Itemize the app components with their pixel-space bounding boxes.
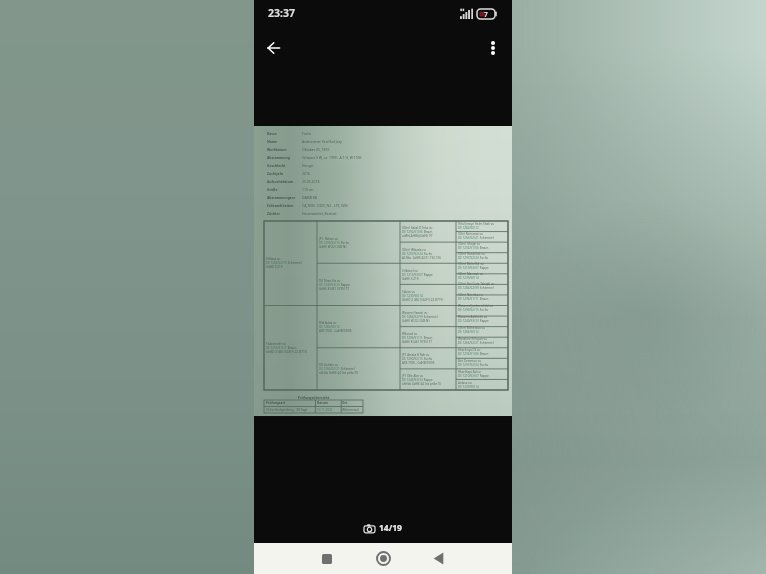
staticText: Schimmel [423,315,438,319]
staticText: DE 1290/52/15 [402,357,423,361]
staticText: Hengst [302,163,314,168]
button[interactable]: Home [363,543,403,574]
staticText: DE 1240/53/33 [402,378,423,382]
staticText: GdHE 8 (441 9735) 77 [319,287,350,291]
staticText: DE 1297/52/24 [458,256,479,260]
staticText: GdHE 8 (441 9735) 77 [402,340,433,344]
staticText: DE 1266/52/21 [458,341,479,345]
button[interactable]: Back [257,32,289,64]
staticText: JP1. Rahan vu [319,237,339,241]
staticText: Rharliesja Dil vu [458,348,481,352]
staticText: (Fila) Jessye Helm Shah vu [458,222,495,226]
staticText: Rappe [479,374,489,378]
staticText: Rappe [423,378,433,382]
staticText: DE 1239/50/14 [402,294,423,298]
staticText: AKS 7035 - GdHB 09/05 [319,329,352,333]
staticText: 10.11.2022 [317,408,342,412]
staticText: Name [267,139,302,144]
staticText: Braun [479,246,489,250]
staticText: DE 1296/51/11 [458,297,479,301]
staticText: Braun [479,352,489,356]
staticText: GhHD 2 (4N-1(449 V 22 B719) [402,298,443,302]
staticText: Bild Adaa vu [319,321,337,325]
staticText: Oktober 25, 1855 [302,147,330,152]
staticText: DE 1266/52/21 [319,367,340,371]
staticText: Hauenwinkel, Bechtal [302,211,337,216]
staticText: DE 1290/52/15 [319,241,340,245]
staticText: anRhLAHBhJ.GdHE 97 [402,234,433,238]
staticText: Braun [423,230,433,234]
staticText: Abstammung [267,155,302,160]
staticText: DE 1240/53/33 [319,283,340,287]
staticText: Zuchtjahr [267,171,302,176]
staticText: JP1 Amata B Rah vu [402,353,430,357]
staticText: ahHds GdHE 44 Iris pr(kn10 [402,382,441,386]
staticText: Fuchs [340,241,349,245]
staticText: Prüfungsübersicht [264,395,363,400]
button[interactable]: Recent apps [307,543,347,574]
staticText: Abstammungsnr [267,195,302,200]
staticText: DAMB KB [302,195,318,200]
staticText: (Ofe) Romanas vu [458,232,483,236]
staticText: Fuchs [423,357,432,361]
staticText: DE 1282/50/12 [458,226,479,230]
staticText: Schimmel [479,236,494,240]
staticText: Fuchs [423,252,432,256]
staticText: Schwarz 5 W, ca. 1999 - A 1 H, W 1556 [302,155,362,160]
staticText: GdHE X 219 [402,277,419,281]
staticText: DE 1239/50/14 [458,385,479,389]
staticText: DE 1282/50/12 [458,330,479,334]
staticText: GhHD 2 (4N-1(449 V 22 B719) [266,350,307,354]
staticText: Wilorad vu [402,332,418,336]
staticText: 25.05.2018 [302,179,320,184]
staticText: Ardennener Greifhof Jary [302,139,342,144]
staticText: (Ufer) Mehefful vu [458,262,484,266]
staticText: (Ofer) Sakal D Inka vu [402,226,433,230]
staticText: Rasse [267,131,302,136]
staticText: Erbkrankheiten [267,203,302,208]
staticText: Rappe [340,283,350,287]
staticText: DE 1284/52/99 [402,315,423,319]
staticText: GdHE X 219 [266,265,283,269]
staticText: Braun [287,346,297,350]
staticText: DE 1297/52/24 [458,363,479,367]
staticText: Rappe [479,319,489,323]
staticText: (Ofer) Bro Gute Tabajdi vu [458,282,495,286]
staticText: DE 1296/51/11 [266,346,287,350]
staticText: DK Dhan-Ha vu [319,279,341,283]
staticText: Fuchs [479,363,488,367]
staticText: Anlasa vu [458,381,472,385]
staticText: DE 1292/51/06 [458,246,479,250]
staticText: (Ofer) Hansevas vu [458,252,485,256]
staticText: Fuchs [302,131,312,136]
staticText: CA, N/N - DOD, N2 - LTE, N/N [302,203,348,208]
staticText: DE 1282/50/12 [319,325,340,329]
staticText: Wurfdatum [267,147,302,152]
staticText: Aufzuchtdatum [267,179,302,184]
staticText: GdHE W 22 (.049 N) [319,245,347,249]
staticText: DE 1284/52/99 [458,286,479,290]
staticText: Waseline Kirlayan vu [458,337,487,341]
staticText: (Ofer) Nitertka vu [458,293,483,297]
staticText: DE 1210/53/07 [458,374,479,378]
staticText: (Ofer) Wlaada vu [402,248,426,252]
staticText: DE 1240/53/33 [458,319,479,323]
button[interactable]: More options [477,32,509,64]
staticText: VJ Eischiedsprüfung - 30 Tage [266,408,317,412]
staticText: Größe [267,187,302,192]
staticText: DE 1266/52/21 [458,236,479,240]
staticText: Wassen Hawaii vu [402,311,428,315]
staticText: Prüfungsart [266,401,317,405]
button[interactable]: Back [419,543,459,574]
staticText: Ort [342,401,363,405]
staticText: Tollwut vu [266,257,281,261]
staticText: DE 1210/53/07 [402,273,423,277]
staticText: AKS 7035 - GdHB 09/05 [402,361,435,365]
staticText: Rharlikaja Ad vu [458,370,481,374]
staticText: Saban vu [402,290,415,294]
staticText: Geschlecht [267,163,302,168]
staticText: Datum [317,401,342,405]
staticText: 7 [484,10,488,19]
staticText: Wassend Junkerschild vu [458,304,493,308]
staticText: Schimmel [479,286,494,290]
